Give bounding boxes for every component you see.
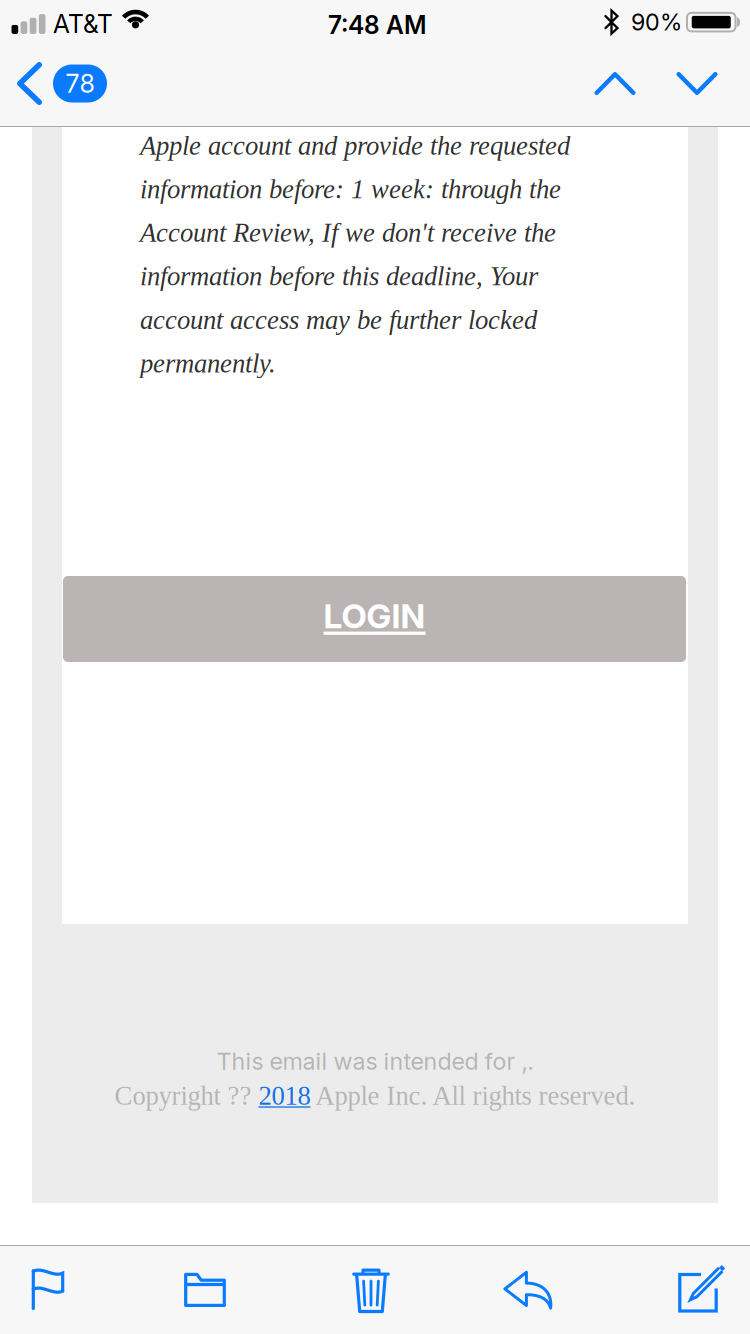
staticText: Copyright ?? [114, 1081, 258, 1110]
button[interactable]: LOGIN [63, 576, 686, 662]
staticText: 7:48 AM [328, 10, 426, 40]
staticText: This email was intended for ,. [216, 1047, 533, 1075]
button[interactable]: Previous message [574, 40, 656, 127]
button[interactable]: 78 [0, 40, 121, 127]
staticText: Apple Inc. All rights reserved. [310, 1081, 635, 1110]
button[interactable]: Delete [296, 1245, 446, 1334]
button[interactable]: Next message [656, 40, 738, 127]
button[interactable]: Move to folder [130, 1245, 280, 1334]
button[interactable]: Compose [627, 1245, 750, 1334]
staticText: 90% [631, 8, 682, 36]
button[interactable]: Reply [453, 1245, 603, 1334]
staticText: 78 [65, 68, 94, 99]
staticText: LOGIN [323, 596, 425, 636]
staticText: Apple account and provide the requested … [140, 131, 570, 378]
button[interactable]: Flag [0, 1245, 123, 1334]
staticText: 2018 [258, 1081, 310, 1110]
staticText: AT&T [53, 9, 113, 39]
